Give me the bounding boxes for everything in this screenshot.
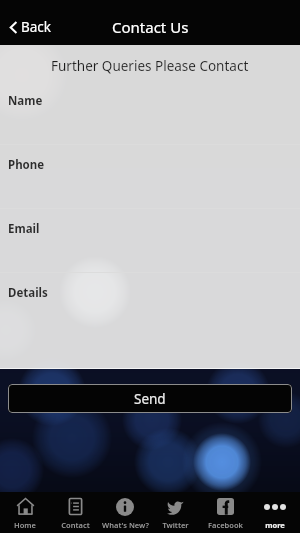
staticText: Send	[134, 390, 166, 408]
staticText: Further Queries Please Contact	[51, 57, 249, 75]
staticText: What's New?	[102, 520, 149, 530]
staticText: Details	[8, 285, 48, 301]
staticText: Home	[14, 520, 36, 530]
staticText: Facebook	[208, 520, 243, 530]
staticText: Contact	[61, 520, 90, 530]
button[interactable]: Email	[0, 209, 300, 272]
button[interactable]: What's New?	[100, 492, 150, 533]
staticText: Name	[8, 93, 43, 109]
button[interactable]: Details	[0, 273, 300, 336]
button[interactable]: Twitter	[150, 492, 200, 533]
staticText: Back	[21, 18, 52, 36]
staticText: Contact Us	[112, 17, 189, 37]
button[interactable]: Home	[0, 492, 50, 533]
staticText: Twitter	[162, 520, 189, 530]
button[interactable]: Facebook	[200, 492, 250, 533]
button[interactable]: Phone	[0, 145, 300, 208]
button[interactable]: Back	[0, 14, 62, 40]
staticText: more	[265, 520, 285, 530]
button[interactable]: Name	[0, 81, 300, 144]
button[interactable]: Contact	[50, 492, 100, 533]
staticText: Email	[8, 221, 40, 237]
button[interactable]: Send	[8, 384, 292, 413]
staticText: Phone	[8, 157, 45, 173]
button[interactable]: more	[250, 492, 300, 533]
